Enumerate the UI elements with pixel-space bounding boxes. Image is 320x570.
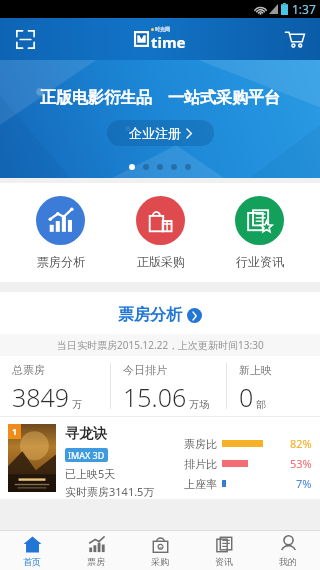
staticText: IMAX 3D xyxy=(68,449,105,461)
staticText: 资讯 xyxy=(215,556,233,567)
button[interactable]: 行业资讯 xyxy=(221,196,298,269)
button[interactable]: 首页 xyxy=(0,531,64,570)
button[interactable]: 资讯 xyxy=(192,531,256,570)
button[interactable]: 正版采购 xyxy=(122,196,199,269)
staticText: 寻龙诀 xyxy=(65,425,107,443)
staticText: 万 xyxy=(72,398,82,411)
staticText: 行业资讯 xyxy=(236,254,284,269)
staticText: 我的 xyxy=(279,556,297,567)
staticText: 上座率 xyxy=(184,477,217,491)
button[interactable]: 正版电影衍生品 一站式采购平台 xyxy=(0,60,320,178)
button[interactable]: 票房分析 xyxy=(22,196,99,269)
staticText: 采购 xyxy=(151,556,169,567)
staticText: 当日实时票房2015.12.22，上次更新时间13:30 xyxy=(57,338,264,352)
staticText: 票房 xyxy=(87,556,105,567)
staticText: 排片比 xyxy=(184,457,217,471)
button[interactable]: 票房分析 xyxy=(0,292,320,334)
button[interactable]: Shopping cart xyxy=(280,24,310,54)
button[interactable]: 时光网 xyxy=(134,26,186,52)
button[interactable]: Scan QR code xyxy=(10,24,40,54)
staticText: 1 xyxy=(8,425,21,437)
staticText: 新上映 xyxy=(239,363,272,377)
staticText: 正版电影衍生品 一站式采购平台 xyxy=(40,86,280,108)
staticText: 万场 xyxy=(189,398,209,411)
button[interactable]: 企业注册 xyxy=(107,120,214,146)
staticText: 实时票房3141.5万 xyxy=(65,484,155,499)
staticText: 部 xyxy=(256,398,266,411)
staticText: time xyxy=(151,32,186,52)
staticText: 首页 xyxy=(23,556,41,567)
staticText: 82% xyxy=(290,436,312,451)
staticText: 正版采购 xyxy=(137,254,185,269)
staticText: 企业注册 xyxy=(129,125,181,141)
button[interactable]: 我的 xyxy=(256,531,320,570)
staticText: 7% xyxy=(296,476,312,491)
staticText: 票房分析 xyxy=(118,305,182,325)
staticText: 15.06 xyxy=(123,380,187,414)
button[interactable]: 1 xyxy=(0,417,320,499)
staticText: 票房分析 xyxy=(37,254,85,269)
staticText: 总票房 xyxy=(12,363,45,377)
staticText: 1:37 xyxy=(292,1,316,17)
staticText: 0 xyxy=(239,380,254,414)
staticText: 票房比 xyxy=(184,437,217,451)
staticText: 53% xyxy=(290,456,312,471)
button[interactable]: 票房 xyxy=(64,531,128,570)
staticText: 今日排片 xyxy=(123,363,167,377)
staticText: 已上映5天 xyxy=(65,466,116,481)
staticText: 时光网 xyxy=(155,26,170,32)
button[interactable]: 采购 xyxy=(128,531,192,570)
staticText: 3849 xyxy=(12,380,70,414)
